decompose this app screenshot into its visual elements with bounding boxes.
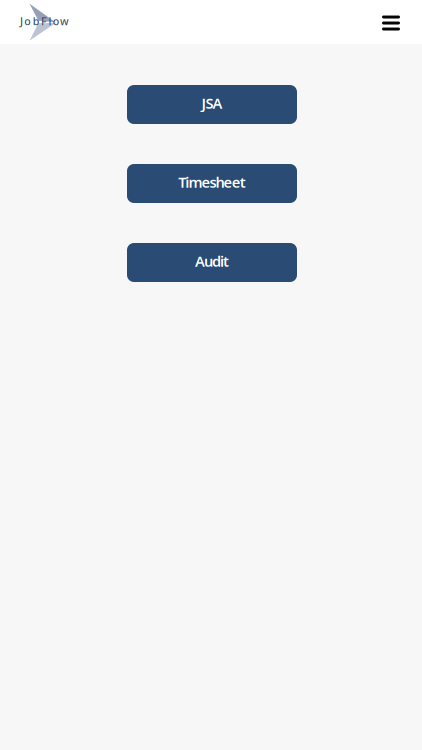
button[interactable]: JSA	[127, 85, 297, 124]
staticText: Audit	[195, 251, 229, 271]
button[interactable]: JobFlow home	[16, 0, 106, 44]
button[interactable]: Audit	[127, 243, 297, 282]
button[interactable]: Timesheet	[127, 164, 297, 203]
staticText: JSA	[201, 93, 223, 113]
button[interactable]: Menu	[371, 2, 411, 42]
staticText: JobFlow	[20, 14, 69, 28]
staticText: Timesheet	[178, 172, 246, 192]
